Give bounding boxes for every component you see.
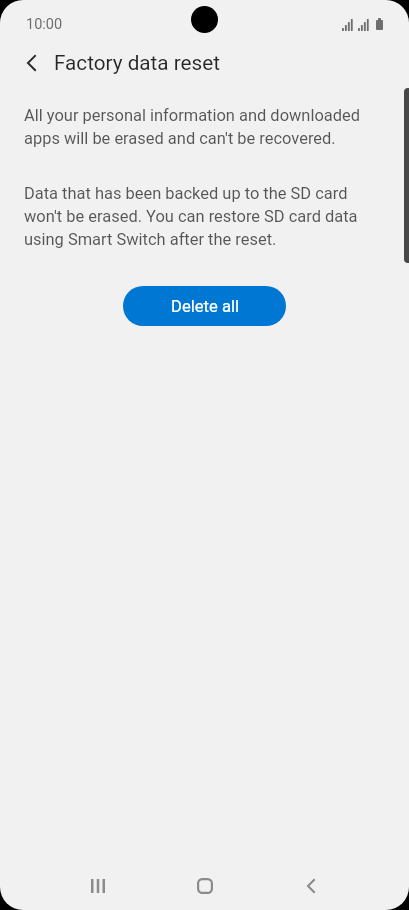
staticText: All your personal information and downlo… xyxy=(24,103,364,149)
button[interactable]: Back xyxy=(276,865,346,906)
staticText: Data that has been backed up to the SD c… xyxy=(24,181,364,250)
button[interactable]: Home xyxy=(170,865,240,906)
button[interactable]: Delete all xyxy=(123,286,286,326)
staticText: 10:00 xyxy=(26,16,63,33)
button[interactable]: Navigate up xyxy=(8,40,54,86)
staticText: Factory data reset xyxy=(54,51,220,75)
staticText: Delete all xyxy=(171,297,239,316)
button[interactable]: Recent apps xyxy=(63,865,133,906)
